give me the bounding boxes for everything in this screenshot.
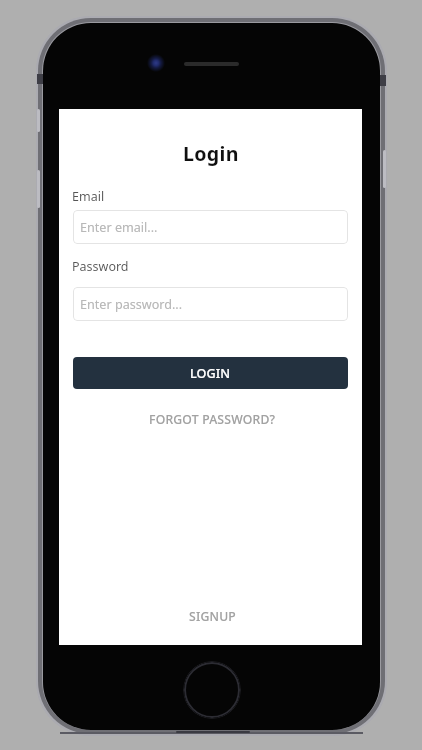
button[interactable]: Enter email... <box>73 210 348 244</box>
button[interactable]: Home <box>183 661 241 719</box>
staticText: Login <box>183 140 239 167</box>
button[interactable]: FORGOT PASSWORD? <box>75 405 350 433</box>
button[interactable]: LOGIN <box>73 357 348 389</box>
staticText: Enter email... <box>80 219 158 236</box>
staticText: LOGIN <box>190 365 231 382</box>
staticText: SIGNUP <box>189 608 236 625</box>
button[interactable]: Enter password... <box>73 287 348 321</box>
staticText: FORGOT PASSWORD? <box>149 411 276 428</box>
staticText: Password <box>72 258 129 275</box>
staticText: Enter password... <box>80 296 183 313</box>
staticText: Email <box>72 188 105 205</box>
button[interactable]: SIGNUP <box>75 602 350 630</box>
